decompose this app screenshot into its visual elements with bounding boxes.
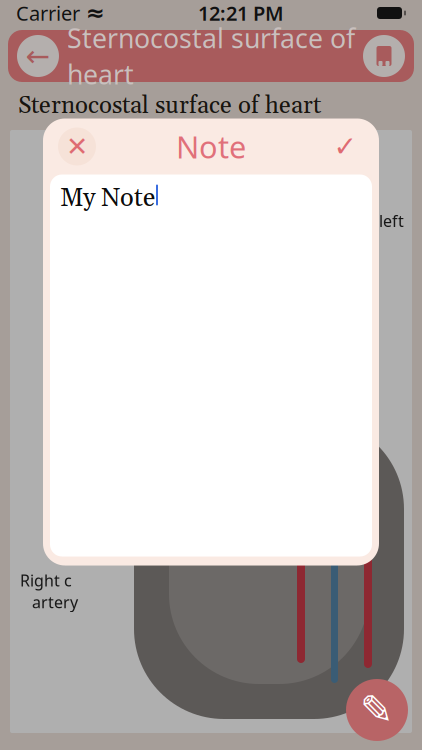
button[interactable]: Close <box>57 126 97 166</box>
staticText: artery <box>32 591 78 613</box>
staticText: ✓ <box>333 131 356 162</box>
staticText: of left <box>359 210 404 232</box>
button[interactable]: Save note <box>325 126 365 166</box>
staticText: Sternocostal surface of heart <box>67 20 355 92</box>
button[interactable]: Back <box>16 34 60 78</box>
staticText: ✕ <box>66 131 88 162</box>
staticText: ry <box>359 232 374 254</box>
button[interactable]: Edit note <box>346 679 408 741</box>
button[interactable]: Bookmark <box>362 34 406 78</box>
staticText: ← <box>25 39 50 73</box>
staticText: 12:21 PM <box>198 0 284 26</box>
staticText: Sternocostal surface of heart <box>18 91 321 121</box>
staticText: Carrier <box>16 0 80 26</box>
staticText: ≈ <box>86 0 105 26</box>
staticText: Right c <box>20 569 72 591</box>
staticText: My Note <box>60 182 155 215</box>
staticText: Note <box>176 126 246 167</box>
staticText: ✎ <box>360 687 394 733</box>
